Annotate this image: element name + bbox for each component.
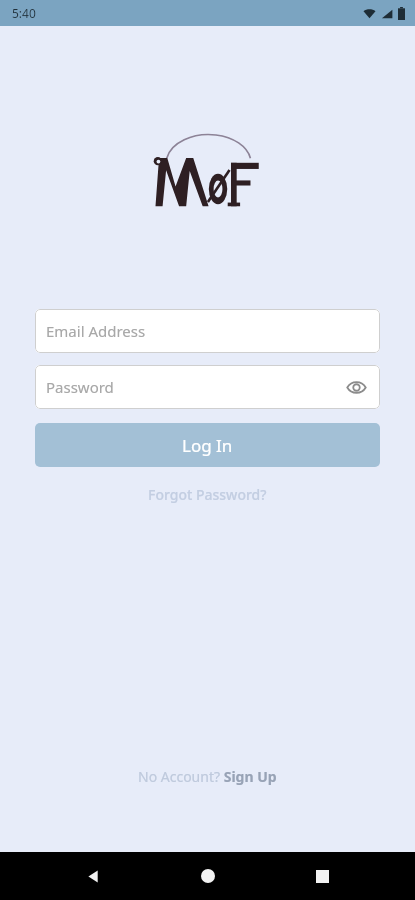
staticText: Forgot Password? <box>148 485 267 504</box>
button[interactable]: Home <box>186 854 230 898</box>
staticText: No Account? Sign Up <box>138 767 277 786</box>
staticText: Password <box>46 377 114 397</box>
button[interactable]: Forgot Password? <box>140 481 275 508</box>
button[interactable]: Password <box>35 365 380 409</box>
button[interactable]: Log In <box>35 423 380 467</box>
button[interactable]: Show password <box>341 372 371 402</box>
staticText: 5:40 <box>12 5 36 21</box>
other: MoF logo <box>149 130 267 212</box>
button[interactable]: Recent apps <box>300 854 344 898</box>
staticText: Log In <box>182 434 233 457</box>
button[interactable]: Back <box>71 854 115 898</box>
button[interactable]: No Account? Sign Up <box>130 763 285 790</box>
button[interactable]: Email Address <box>35 309 380 353</box>
staticText: Email Address <box>46 321 146 341</box>
